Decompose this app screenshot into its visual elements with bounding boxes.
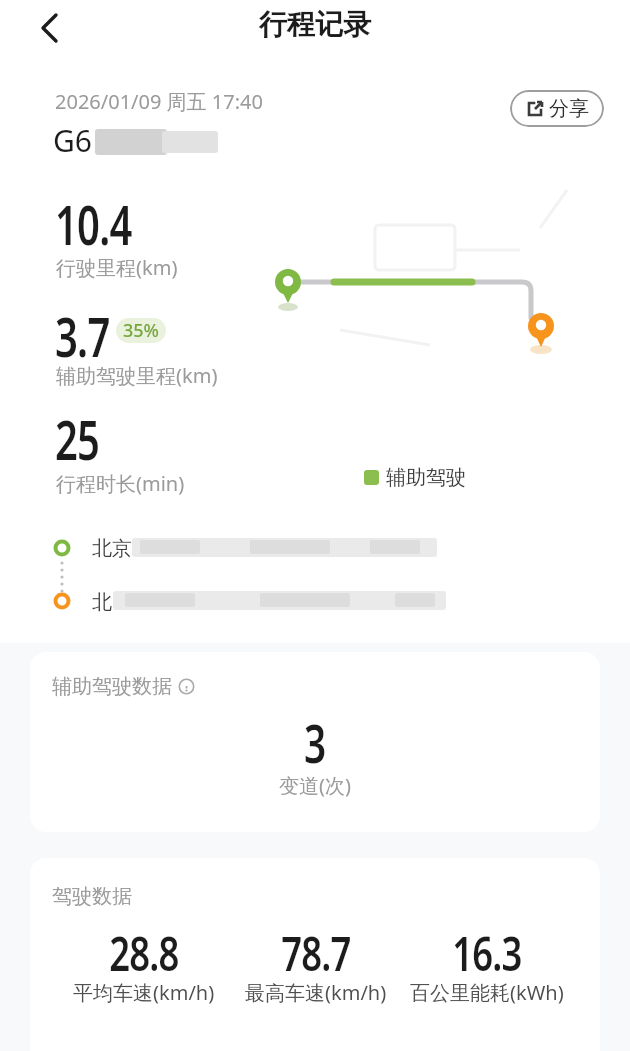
staticText: 16.3 [452,921,522,985]
staticText: 行程记录 [259,7,371,42]
staticText: 北京 [92,536,132,561]
staticText: 变道(次) [279,772,351,799]
staticText: 北 [92,590,112,615]
staticText: 28.8 [109,921,179,985]
staticText: 35% [123,318,159,343]
staticText: 辅助驾驶里程(km) [56,362,218,389]
staticText: 驾驶数据 [52,884,132,909]
staticText: 平均车速(km/h) [73,979,215,1006]
staticText: 行程时长(min) [56,470,185,497]
staticText: 2026/01/09 周五 17:40 [55,88,263,115]
staticText: 25 [55,402,99,476]
staticText: 行驶里程(km) [56,254,178,281]
staticText: 分享 [549,96,589,121]
staticText: 10.4 [55,187,132,261]
staticText: G6 [53,120,92,161]
staticText: 百公里能耗(kWh) [410,979,564,1006]
button[interactable]: 分享 [510,90,604,127]
staticText: 辅助驾驶 [386,465,466,490]
staticText: 3.7 [55,299,110,373]
staticText: 最高车速(km/h) [245,979,387,1006]
staticText: 辅助驾驶数据 [52,674,172,699]
staticText: 3 [304,706,326,778]
staticText: 78.7 [281,921,351,985]
button[interactable] [30,6,70,50]
